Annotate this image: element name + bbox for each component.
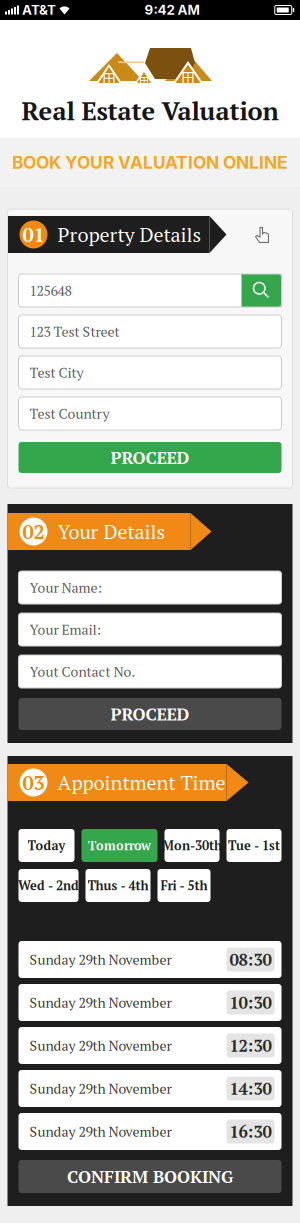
button[interactable]: Today (18, 829, 74, 862)
staticText: 03 (22, 769, 44, 796)
button[interactable]: PROCEED (18, 698, 281, 730)
button[interactable]: Sunday 29th November (18, 984, 281, 1021)
staticText: 125648 (29, 281, 71, 300)
staticText: 12:30 (229, 1034, 271, 1057)
staticText: Wed - 2nd (18, 877, 79, 894)
staticText: Tomorrow (88, 837, 151, 854)
staticText: PROCEED (110, 702, 189, 725)
button[interactable]: Sunday 29th November (18, 1027, 281, 1064)
staticText: BOOK YOUR VALUATION ONLINE (12, 152, 288, 173)
staticText: Sunday 29th November (29, 1036, 171, 1055)
staticText: 10:30 (229, 991, 271, 1014)
staticText: Sunday 29th November (29, 1122, 171, 1141)
staticText: Sunday 29th November (29, 950, 171, 969)
staticText: 08:30 (229, 948, 271, 971)
staticText: Your Details (57, 518, 165, 545)
button[interactable]: Search postcode (241, 274, 281, 307)
staticText: Thus - 4th (87, 877, 148, 894)
staticText: 16:30 (229, 1120, 271, 1143)
staticText: Property Details (57, 221, 201, 248)
staticText: 14:30 (229, 1077, 271, 1100)
staticText: Test City (29, 363, 83, 382)
button[interactable]: Tue - 1st (226, 829, 281, 862)
button[interactable]: PROCEED (18, 442, 281, 473)
button[interactable]: Tomorrow (81, 829, 157, 862)
staticText: Appointment Time (57, 769, 225, 796)
staticText: 01 (22, 221, 44, 248)
button[interactable]: Thus - 4th (85, 869, 150, 902)
staticText: Real Estate Valuation (21, 94, 278, 128)
staticText: PROCEED (110, 446, 189, 469)
button[interactable]: Wed - 2nd (18, 869, 78, 902)
staticText: AT&T (22, 2, 56, 18)
staticText: 02 (22, 518, 44, 545)
staticText: Your Name: (29, 578, 102, 597)
staticText: Sunday 29th November (29, 1079, 171, 1098)
staticText: Tue - 1st (228, 837, 280, 854)
staticText: CONFIRM BOOKING (67, 1165, 233, 1188)
staticText: Sunday 29th November (29, 993, 171, 1012)
staticText: 9:42 AM (144, 2, 199, 18)
staticText: Today (27, 837, 65, 854)
staticText: Yout Contact No. (29, 662, 135, 681)
button[interactable]: Mon-30th (164, 829, 219, 862)
staticText: Your Email: (29, 620, 101, 639)
button[interactable]: Sunday 29th November (18, 1113, 281, 1150)
button[interactable]: Sunday 29th November (18, 1070, 281, 1107)
button[interactable]: Fri - 5th (157, 869, 210, 902)
staticText: Mon-30th (162, 837, 222, 854)
button[interactable]: CONFIRM BOOKING (18, 1160, 281, 1193)
button[interactable]: Sunday 29th November (18, 941, 281, 978)
staticText: Test Country (29, 404, 109, 423)
staticText: Fri - 5th (160, 877, 207, 894)
staticText: 123 Test Street (29, 322, 119, 341)
